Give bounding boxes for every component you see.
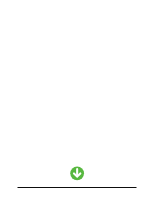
button[interactable]: Download — [70, 166, 85, 181]
